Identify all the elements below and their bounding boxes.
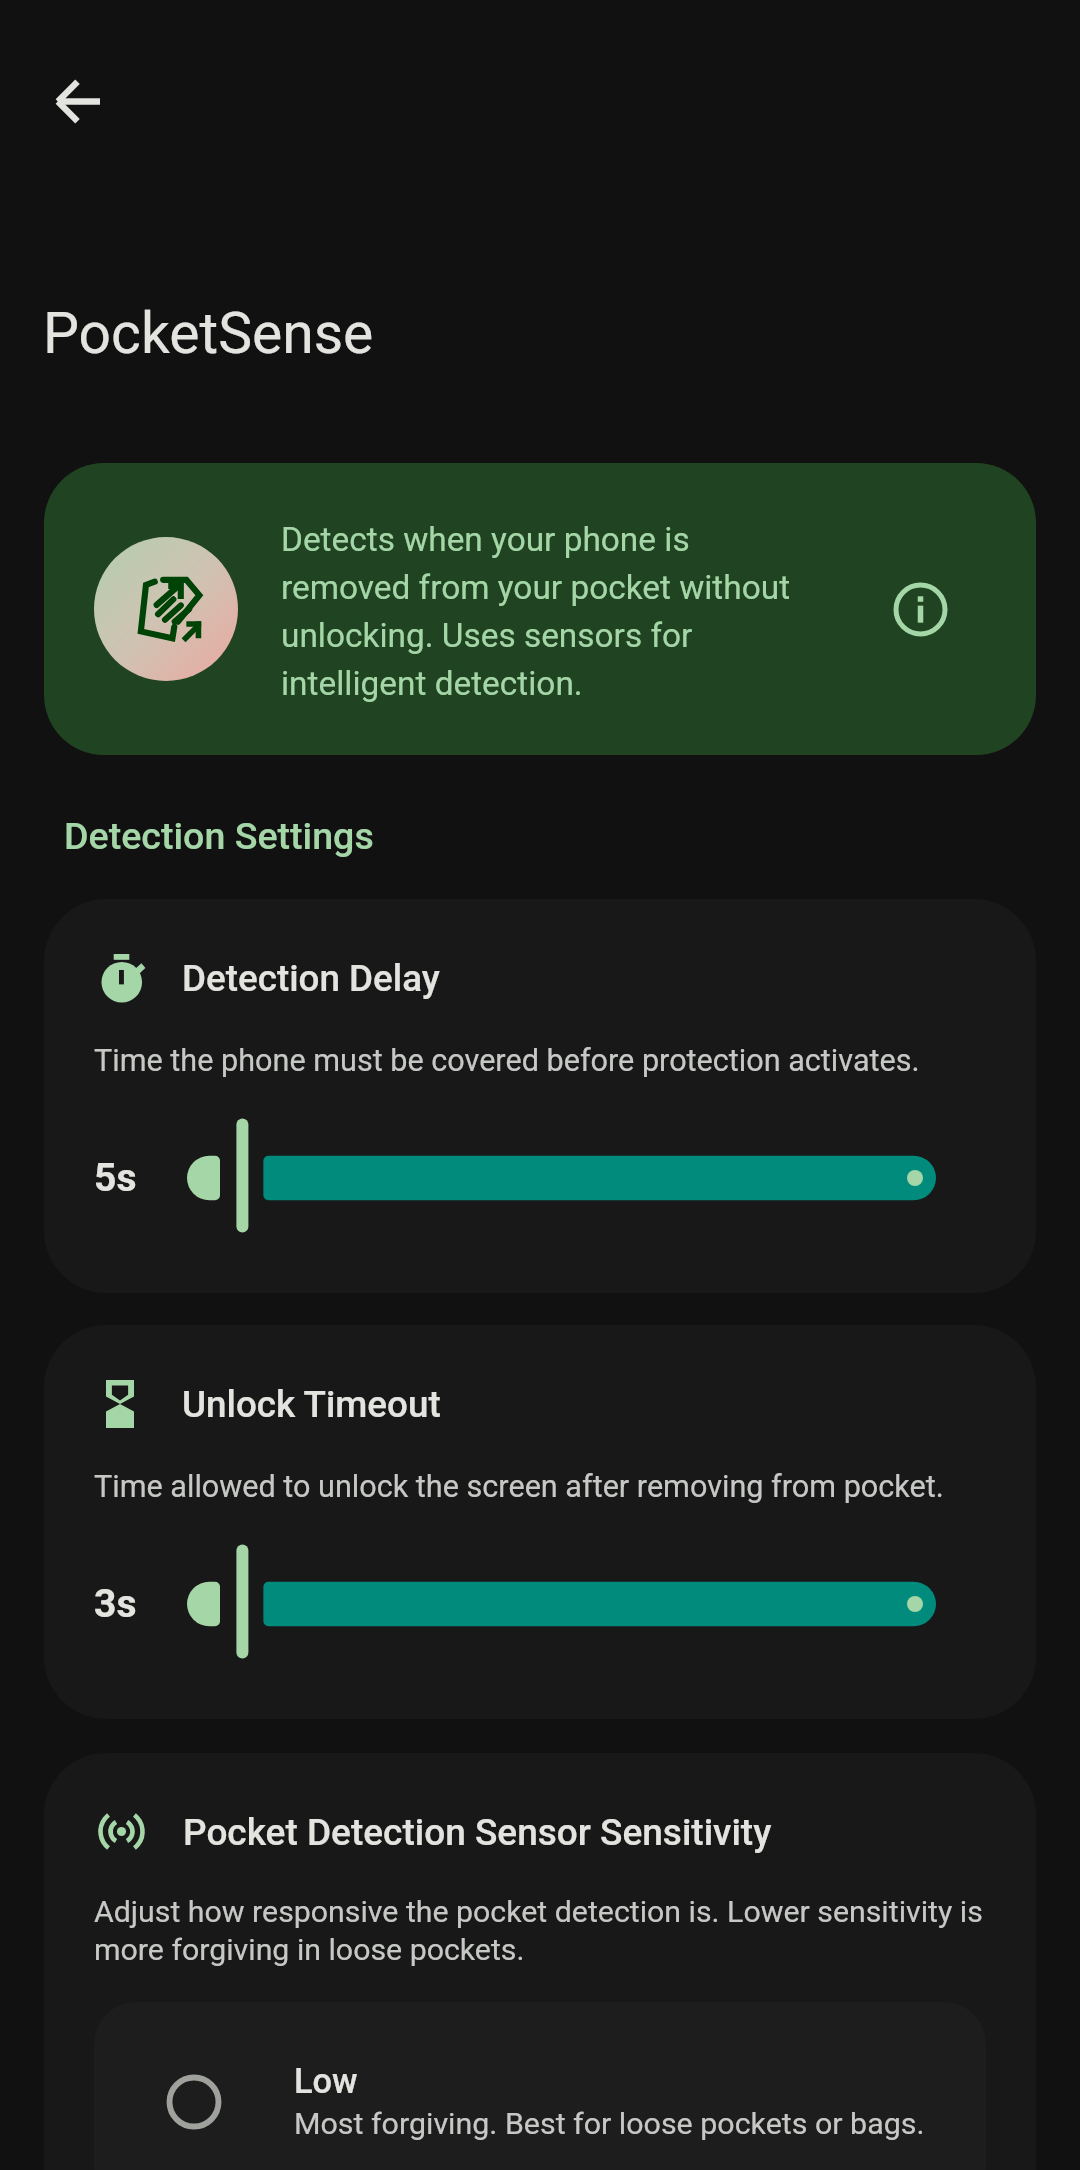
staticText: 5s: [94, 1156, 137, 1200]
staticText: Time the phone must be covered before pr…: [94, 1033, 920, 1081]
staticText: Detects when your phone is removed from …: [281, 513, 821, 705]
staticText: Low: [294, 2060, 358, 2102]
staticText: Unlock Timeout: [182, 1382, 441, 1426]
button[interactable]: Navigate back: [31, 55, 123, 147]
staticText: Detection Delay: [182, 956, 440, 1000]
button[interactable]: Adjust value: [187, 1108, 936, 1240]
staticText: Most forgiving. Best for loose pockets o…: [294, 2102, 925, 2143]
staticText: Time allowed to unlock the screen after …: [94, 1459, 944, 1507]
staticText: 3s: [94, 1582, 137, 1626]
button[interactable]: Detects when your phone is removed from …: [44, 463, 1036, 755]
staticText: PocketSense: [43, 304, 374, 366]
button[interactable]: Low: [94, 2002, 986, 2170]
button[interactable]: More information: [880, 569, 960, 649]
button[interactable]: Adjust value: [187, 1534, 936, 1666]
staticText: Detection Settings: [64, 814, 374, 858]
staticText: Adjust how responsive the pocket detecti…: [94, 1892, 986, 1968]
staticText: Pocket Detection Sensor Sensitivity: [183, 1810, 772, 1854]
